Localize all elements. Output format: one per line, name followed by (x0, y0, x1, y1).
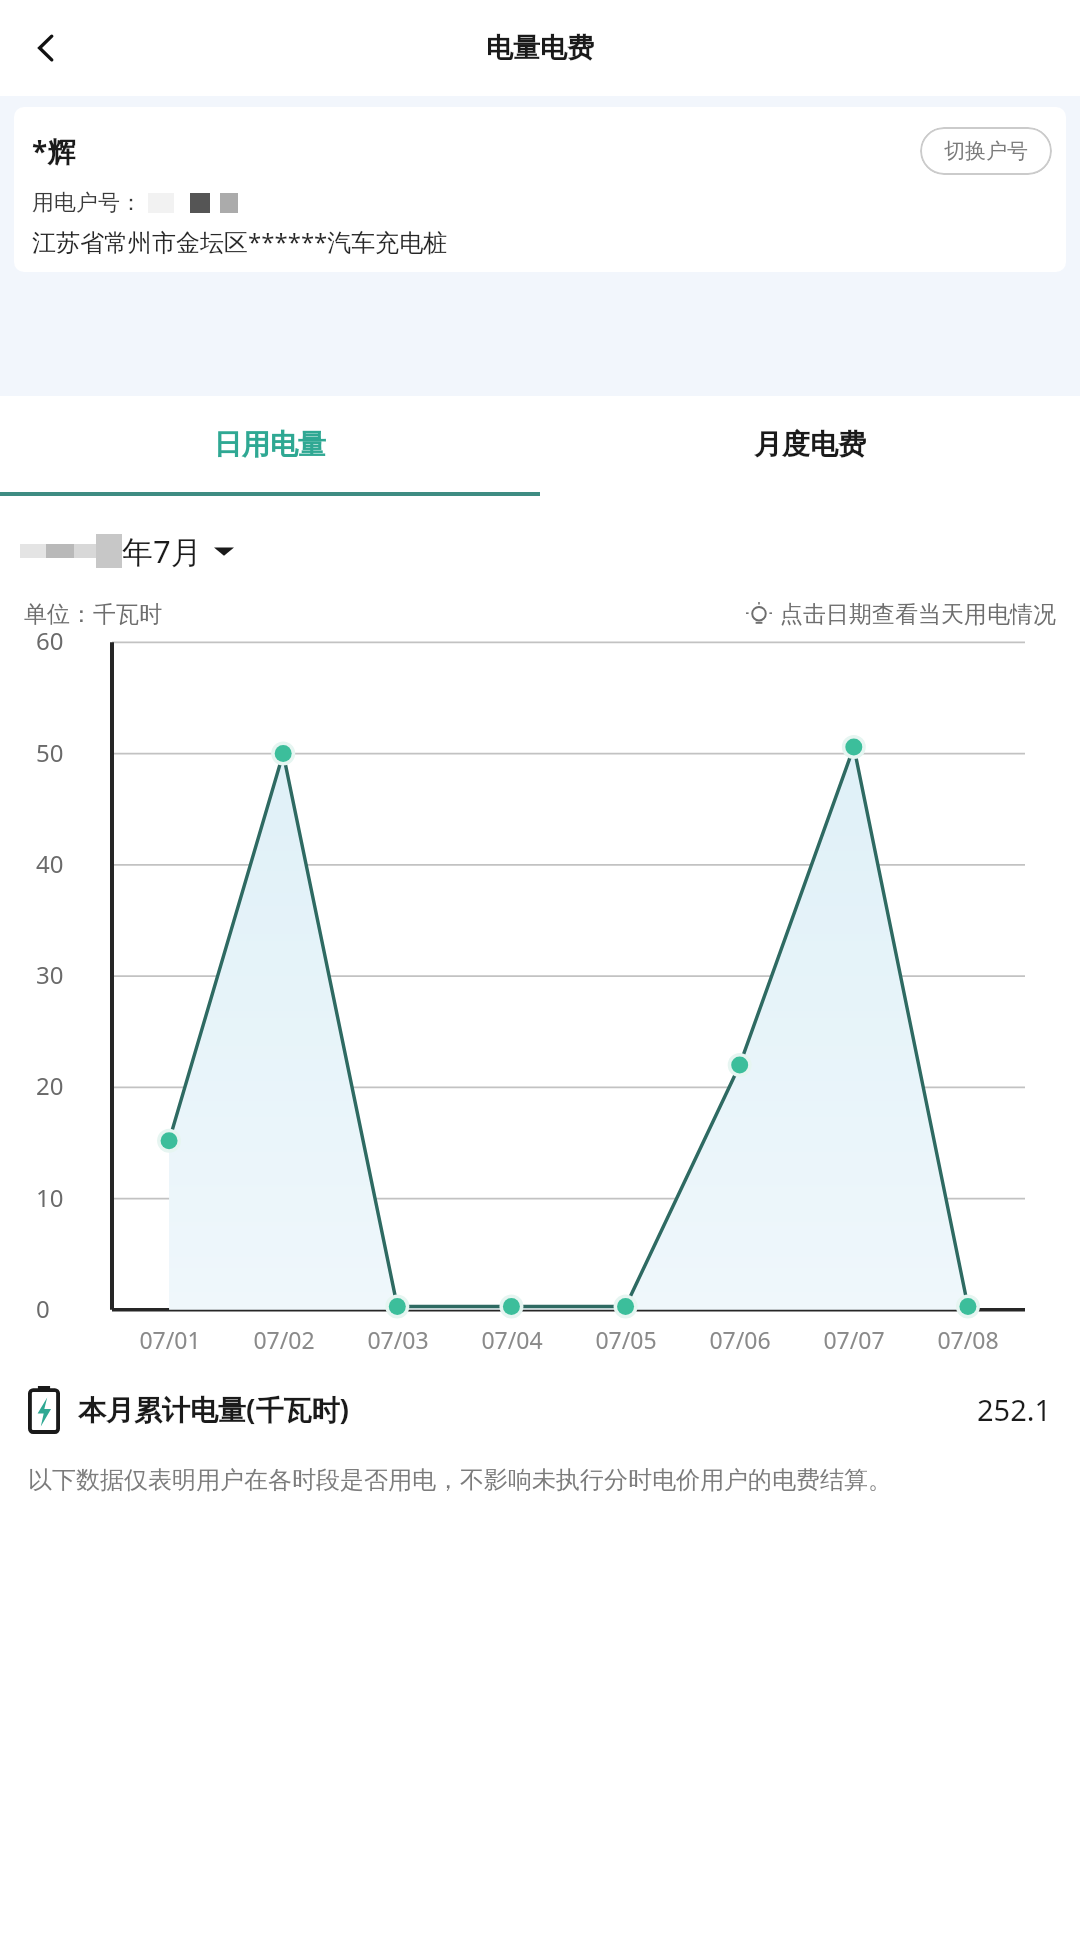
staticText: 07/08 (937, 1324, 999, 1355)
staticText: 年7月 (122, 530, 202, 572)
staticText: 20 (36, 1069, 64, 1102)
staticText: *辉 (32, 132, 76, 170)
staticText: 电量电费 (486, 31, 594, 65)
staticText: 本月累计电量(千瓦时) (78, 1390, 349, 1428)
staticText: 07/01 (139, 1324, 201, 1355)
staticText: 江苏省常州市金坛区******汽车充电桩 (32, 225, 448, 258)
staticText: 60 (36, 624, 64, 657)
staticText: 30 (36, 958, 64, 991)
button[interactable]: 月度电费 (540, 396, 1080, 492)
staticText: 10 (36, 1181, 64, 1214)
button[interactable]: 日用电量 (0, 396, 540, 492)
staticText: 0 (36, 1292, 50, 1325)
staticText: 以下数据仅表明用户在各时段是否用电，不影响未执行分时电价用户的电费结算。 (28, 1465, 1046, 1495)
staticText: 40 (36, 847, 64, 880)
staticText: 50 (36, 736, 64, 769)
staticText: 单位：千瓦时 (24, 600, 162, 629)
staticText: 07/07 (823, 1324, 885, 1355)
staticText: 07/02 (253, 1324, 315, 1355)
button[interactable]: 年7月 (20, 526, 234, 576)
staticText: 切换户号 (944, 138, 1028, 164)
staticText: 日用电量 (214, 427, 326, 462)
button[interactable]: 切换户号 (920, 127, 1052, 175)
staticText: 点击日期查看当天用电情况 (780, 600, 1056, 629)
staticText: 07/06 (709, 1324, 771, 1355)
button[interactable]: Back (14, 16, 78, 80)
staticText: 用电户号： (32, 189, 142, 217)
staticText: 07/04 (481, 1324, 543, 1355)
staticText: 07/03 (367, 1324, 429, 1355)
staticText: 07/05 (595, 1324, 657, 1355)
staticText: 252.1 (977, 1390, 1052, 1429)
staticText: 月度电费 (754, 427, 866, 462)
